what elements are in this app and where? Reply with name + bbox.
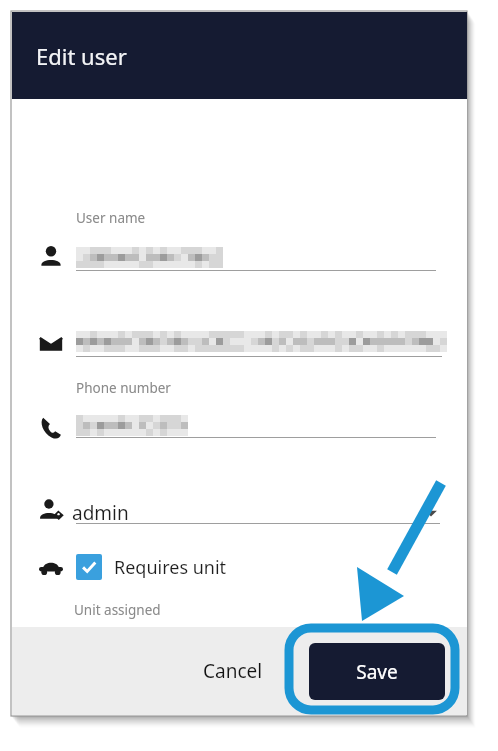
button[interactable]: Cancel [189, 645, 277, 697]
button[interactable]: Changing unit [72, 621, 324, 659]
button[interactable]: Requires unit [76, 549, 227, 585]
staticText: Requires unit [114, 555, 227, 580]
staticText: Save [356, 659, 398, 685]
staticText: Cancel [203, 658, 263, 684]
button[interactable]: admin [72, 491, 440, 535]
staticText: Unit assigned [74, 601, 161, 619]
button[interactable]: Save [309, 643, 445, 700]
staticText: Phone number [76, 379, 171, 397]
staticText: User name [76, 209, 146, 227]
staticText: Edit user [36, 41, 127, 71]
staticText: admin [72, 500, 129, 526]
